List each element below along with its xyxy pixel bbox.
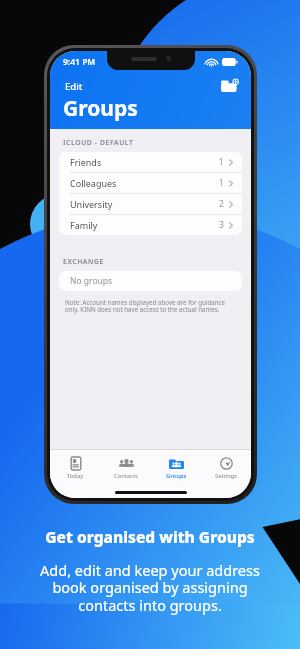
staticText: Note: Account names displayed above are … <box>65 298 225 314</box>
staticText: 3 <box>219 219 224 231</box>
staticText: 9:41 PM <box>63 56 96 68</box>
button[interactable]: No groups <box>59 271 242 291</box>
button[interactable]: Edit <box>63 77 85 96</box>
staticText: Groups <box>166 472 187 480</box>
staticText: Today <box>67 472 84 480</box>
button[interactable]: Today <box>50 450 101 487</box>
staticText: No groups <box>70 275 113 287</box>
button[interactable]: University <box>59 193 242 214</box>
staticText: 1 <box>219 156 224 168</box>
staticText: Family <box>70 219 98 231</box>
staticText: ICLOUD - DEFAULT <box>63 138 134 147</box>
staticText: 2 <box>219 198 224 210</box>
button[interactable]: Groups <box>151 450 201 487</box>
button[interactable]: Settings <box>201 450 251 487</box>
button[interactable]: Family <box>59 214 242 235</box>
button[interactable]: Colleagues <box>59 172 242 193</box>
staticText: Friends <box>70 156 102 168</box>
staticText: Contacts <box>114 472 138 480</box>
staticText: EXCHANGE <box>63 257 104 266</box>
staticText: Groups <box>63 94 138 123</box>
staticText: University <box>70 198 113 210</box>
staticText: 1 <box>219 177 224 189</box>
button[interactable]: New group <box>218 75 240 97</box>
button[interactable]: Contacts <box>101 450 151 487</box>
button[interactable]: Friends <box>59 152 242 172</box>
staticText: Get organised with Groups <box>45 526 255 547</box>
staticText: Colleagues <box>70 177 117 189</box>
staticText: Edit <box>65 80 83 93</box>
staticText: Add, edit and keep your address book org… <box>40 560 260 615</box>
staticText: Settings <box>215 472 238 480</box>
